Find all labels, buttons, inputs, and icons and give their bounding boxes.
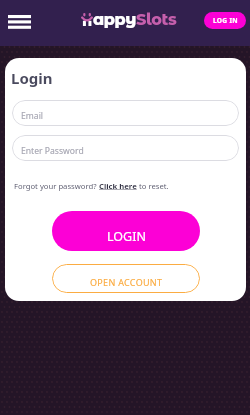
staticText: Email: [21, 110, 44, 122]
button[interactable]: LOGIN: [52, 211, 200, 251]
staticText: LOG IN: [213, 16, 238, 25]
button[interactable]: Open navigation menu: [8, 11, 31, 33]
button[interactable]: LOG IN: [204, 12, 246, 29]
button[interactable]: Enter Password: [12, 135, 239, 161]
staticText: Enter Password: [21, 145, 84, 157]
button[interactable]: Click here: [99, 181, 137, 191]
staticText: Forgot your password?: [14, 181, 99, 191]
staticText: appy: [93, 10, 136, 30]
staticText: LOGIN: [107, 228, 146, 245]
button[interactable]: OPEN ACCOUNT: [52, 264, 200, 293]
staticText: Slots: [136, 10, 177, 30]
button[interactable]: Email: [12, 100, 239, 126]
staticText: OPEN ACCOUNT: [90, 276, 163, 288]
staticText: to reset.: [137, 181, 169, 191]
staticText: Login: [11, 68, 53, 88]
